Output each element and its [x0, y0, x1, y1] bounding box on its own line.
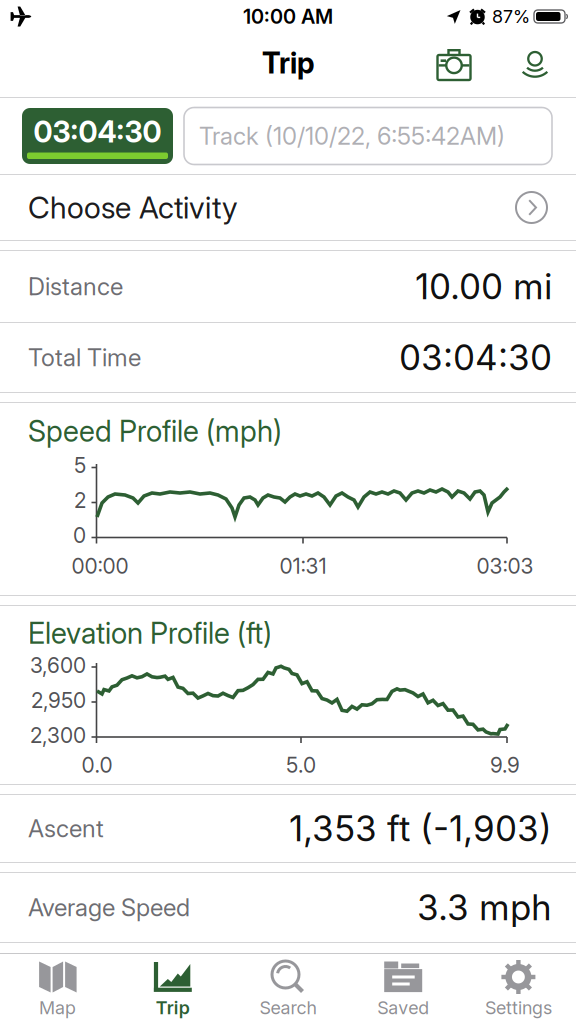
- staticText: Map: [39, 997, 76, 1018]
- staticText: Trip: [262, 46, 314, 80]
- staticText: 0.0: [81, 753, 112, 777]
- staticText: 1,353 ft (-1,903): [289, 808, 552, 849]
- staticText: Trip: [156, 997, 190, 1018]
- staticText: 2: [74, 488, 86, 513]
- button[interactable]: Map: [0, 954, 115, 1024]
- staticText: 03:03: [476, 554, 533, 578]
- staticText: 2,950: [31, 688, 86, 713]
- staticText: 5: [74, 453, 86, 478]
- button[interactable]: Settings: [461, 954, 576, 1024]
- staticText: 00:00: [71, 554, 128, 578]
- staticText: 9.9: [490, 753, 520, 777]
- staticText: Choose Activity: [28, 190, 238, 225]
- staticText: Total Time: [28, 343, 141, 372]
- button[interactable]: Search: [230, 954, 346, 1024]
- staticText: 10.00 mi: [415, 266, 552, 307]
- staticText: 2,300: [30, 723, 86, 748]
- staticText: 03:04:30: [33, 115, 161, 149]
- staticText: 01:31: [279, 554, 326, 578]
- staticText: 03:04:30: [399, 337, 552, 378]
- staticText: 87%: [492, 6, 530, 27]
- button[interactable]: Saved: [346, 954, 461, 1024]
- staticText: Track (10/10/22, 6:55:42AM): [199, 122, 505, 150]
- staticText: 0: [73, 523, 86, 548]
- staticText: 10:00 AM: [243, 5, 333, 28]
- staticText: Search: [259, 997, 316, 1018]
- staticText: Saved: [377, 997, 429, 1018]
- staticText: Ascent: [28, 814, 104, 843]
- staticText: Elevation Profile (ft): [28, 616, 272, 650]
- staticText: Average Speed: [28, 893, 190, 922]
- staticText: Settings: [485, 997, 552, 1018]
- staticText: Distance: [28, 272, 123, 301]
- staticText: 3.3 mph: [417, 887, 552, 928]
- staticText: 3,600: [30, 653, 86, 678]
- button[interactable]: 03:04:30: [22, 108, 173, 164]
- button[interactable]: Choose Activity: [0, 175, 576, 240]
- button[interactable]: Trip: [115, 954, 230, 1024]
- staticText: Speed Profile (mph): [28, 414, 282, 448]
- button[interactable]: Track (10/10/22, 6:55:42AM): [173, 107, 552, 164]
- button[interactable]: [437, 49, 471, 81]
- staticText: 5.0: [286, 753, 316, 777]
- button[interactable]: [471, 52, 576, 78]
